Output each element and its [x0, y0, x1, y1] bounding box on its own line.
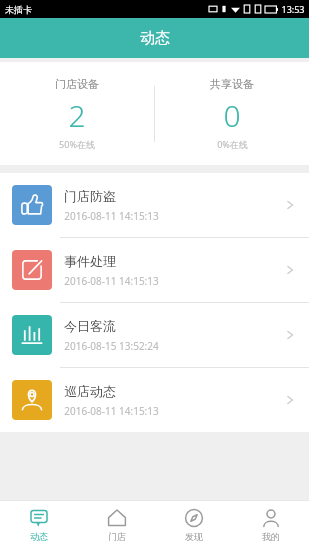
- staticText: 50%在线: [59, 138, 95, 150]
- staticText: 2016-08-11 14:15:13: [64, 209, 159, 223]
- staticText: 2: [68, 95, 86, 136]
- staticText: 未插卡: [5, 4, 32, 15]
- staticText: 门店设备: [55, 77, 99, 91]
- staticText: 2016-08-11 14:15:13: [64, 404, 159, 418]
- staticText: 2016-08-11 14:15:13: [64, 274, 159, 288]
- button[interactable]: 事件处理: [0, 238, 309, 303]
- staticText: 门店: [108, 531, 126, 542]
- button[interactable]: 发现: [155, 500, 232, 550]
- staticText: 我的: [262, 531, 280, 542]
- staticText: 发现: [185, 531, 203, 542]
- staticText: 13:53: [281, 3, 305, 15]
- staticText: 门店防盗: [64, 188, 116, 204]
- button[interactable]: 门店防盗: [0, 173, 309, 238]
- staticText: 2016-08-15 13:52:24: [64, 339, 159, 353]
- staticText: 巡店动态: [64, 383, 116, 399]
- button[interactable]: 门店: [78, 500, 155, 550]
- button[interactable]: 我的: [232, 500, 309, 550]
- staticText: 今日客流: [64, 318, 116, 334]
- staticText: 动态: [140, 29, 170, 48]
- button[interactable]: 巡店动态: [0, 368, 309, 432]
- staticText: 事件处理: [64, 253, 116, 269]
- staticText: 0: [223, 95, 241, 136]
- staticText: 0%在线: [217, 138, 248, 150]
- button[interactable]: 今日客流: [0, 303, 309, 368]
- button[interactable]: 动态: [0, 500, 78, 550]
- staticText: 动态: [30, 531, 48, 542]
- staticText: 共享设备: [210, 77, 254, 91]
